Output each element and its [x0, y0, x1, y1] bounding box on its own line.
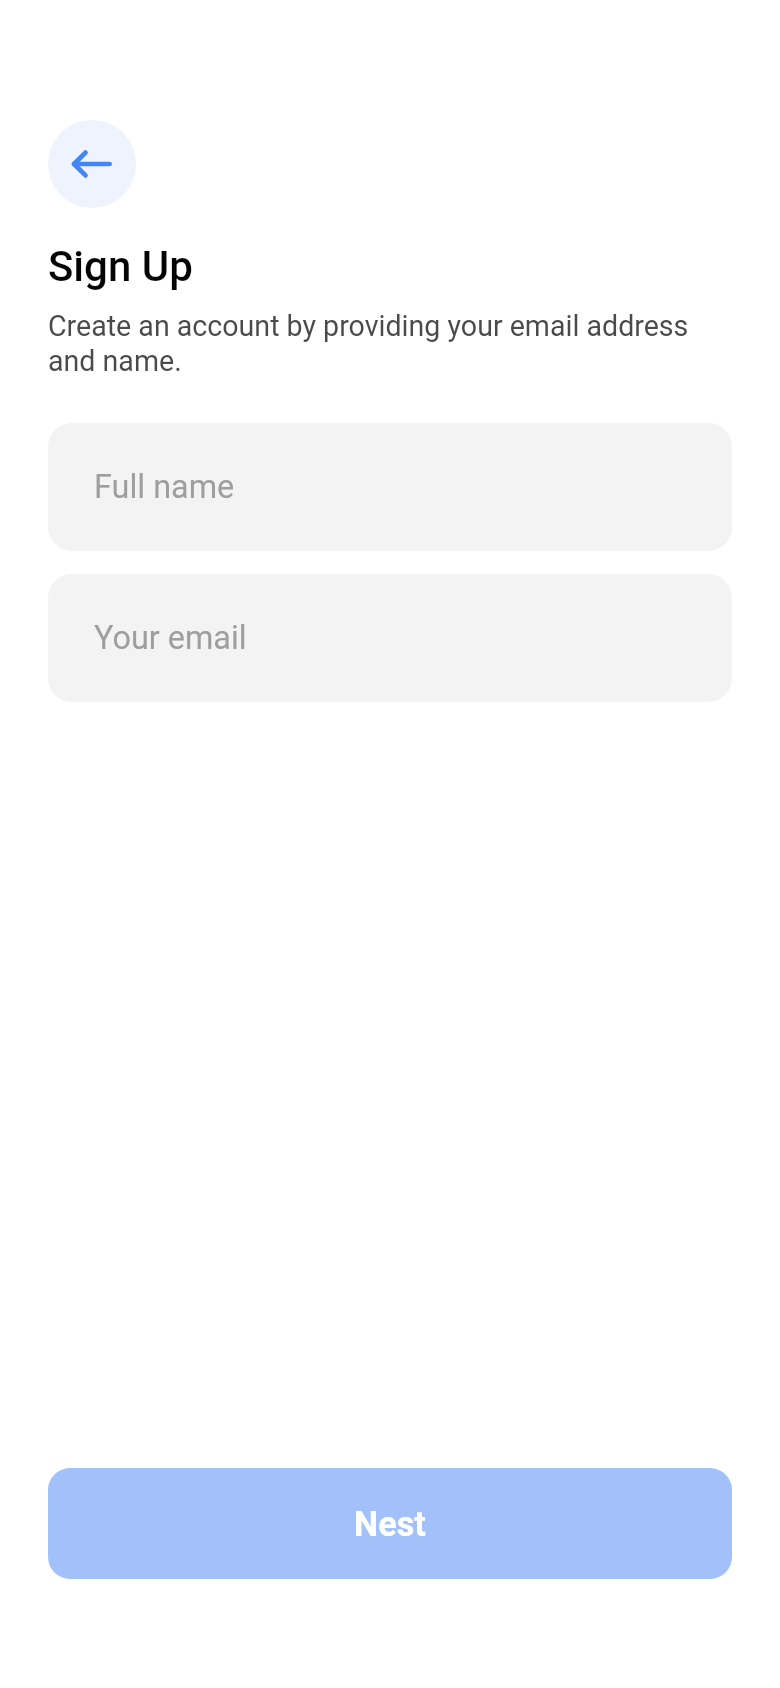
staticText: Create an account by providing your emai… [48, 309, 720, 378]
staticText: Your email [94, 619, 247, 657]
staticText: Nest [354, 1504, 426, 1544]
button[interactable]: Nest [48, 1468, 732, 1579]
button[interactable]: Full name [48, 423, 732, 551]
button[interactable]: Your email [48, 574, 732, 702]
button[interactable]: Back [48, 120, 136, 208]
staticText: Full name [94, 468, 235, 506]
staticText: Sign Up [48, 242, 193, 291]
